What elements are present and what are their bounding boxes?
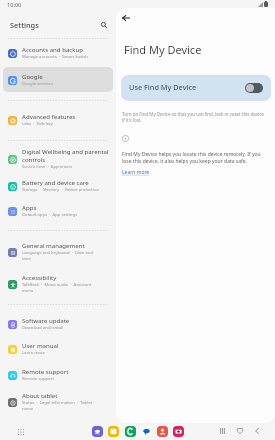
staticText: Turn on Find My Device so that you can f… xyxy=(122,111,264,123)
button[interactable]: App 3 xyxy=(125,426,136,437)
staticText: time xyxy=(22,256,31,262)
staticText: Accounts and backup xyxy=(22,45,84,53)
staticText: Learn more xyxy=(22,350,45,356)
staticText: Digital Wellbeing and parental xyxy=(22,147,109,155)
staticText: Software update xyxy=(22,316,70,324)
staticText: Accessibility xyxy=(22,273,57,281)
staticText: menu xyxy=(22,288,34,294)
staticText: TalkBack · Mono audio · Assistant xyxy=(22,282,92,288)
button[interactable]: Recents xyxy=(216,425,228,437)
staticText: User manual xyxy=(22,341,59,349)
staticText: Settings xyxy=(10,20,39,30)
button[interactable]: Advanced features xyxy=(3,107,113,132)
button[interactable]: Google xyxy=(3,67,113,92)
staticText: Learn more xyxy=(122,169,150,176)
staticText: Storage · Memory · Device protection xyxy=(22,187,100,193)
button[interactable]: App 4 xyxy=(141,426,152,437)
button[interactable]: Learn more xyxy=(122,169,150,176)
staticText: Status · Legal information · Tablet xyxy=(22,400,93,406)
button[interactable]: Digital Wellbeing and parental xyxy=(3,142,113,175)
staticText: Advanced features xyxy=(22,112,76,120)
button[interactable]: App 1 xyxy=(92,426,103,437)
button[interactable]: Use Find My Device xyxy=(121,75,271,101)
button[interactable]: About tablet xyxy=(3,386,113,417)
staticText: Remote support xyxy=(22,367,69,375)
staticText: Find My Device xyxy=(124,42,202,57)
button[interactable]: App 5 xyxy=(157,426,168,437)
staticText: 10:00 xyxy=(7,1,22,9)
button[interactable]: Remote support xyxy=(3,362,113,387)
button[interactable]: Back xyxy=(118,10,134,26)
button[interactable]: All apps xyxy=(15,426,27,438)
button[interactable]: Search xyxy=(97,18,111,32)
staticText: Apps xyxy=(22,203,37,211)
button[interactable]: General management xyxy=(3,236,113,267)
staticText: Google xyxy=(22,72,43,80)
button[interactable]: Back xyxy=(251,425,263,437)
button[interactable]: Software update xyxy=(3,311,113,336)
staticText: Download and install xyxy=(22,325,64,331)
staticText: Google services xyxy=(22,81,53,87)
button[interactable]: Accounts and backup xyxy=(3,40,113,65)
staticText: controls xyxy=(22,155,46,163)
staticText: Screen time · App timers xyxy=(22,164,73,170)
button[interactable]: App 2 xyxy=(108,426,119,437)
staticText: name xyxy=(22,406,34,412)
staticText: Battery and device care xyxy=(22,178,89,186)
staticText: Remote support xyxy=(22,376,54,382)
staticText: General management xyxy=(22,241,85,249)
staticText: About tablet xyxy=(22,391,58,399)
staticText: Find My Device helps you locate this dev… xyxy=(122,151,261,165)
staticText: Manage accounts · Smart Switch xyxy=(22,54,88,60)
staticText: Language and keyboard · Date and xyxy=(22,250,93,256)
staticText: Labs · Side key xyxy=(22,121,53,127)
button[interactable]: Battery and device care xyxy=(3,173,113,198)
staticText: Use Find My Device xyxy=(129,82,197,92)
button[interactable]: Accessibility xyxy=(3,268,113,299)
button[interactable]: Home xyxy=(234,425,246,437)
staticText: Default apps · App settings xyxy=(22,212,78,218)
button[interactable]: App 6 xyxy=(173,426,184,437)
button[interactable]: User manual xyxy=(3,336,113,361)
button[interactable]: Apps xyxy=(3,198,113,223)
